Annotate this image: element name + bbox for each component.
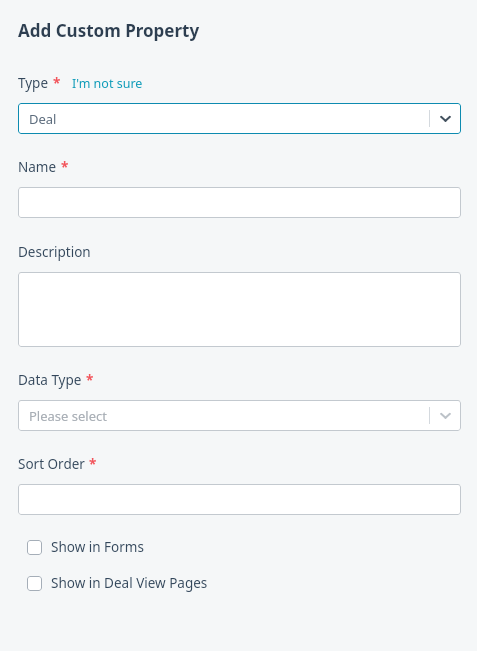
staticText: * — [61, 158, 69, 176]
staticText: Please select — [29, 407, 429, 425]
staticText: Sort Order — [18, 455, 85, 473]
staticText: Name — [18, 158, 57, 176]
staticText: Add Custom Property — [18, 19, 200, 42]
staticText: Deal — [29, 110, 429, 128]
staticText: I'm not sure — [72, 75, 143, 92]
button[interactable] — [18, 484, 461, 515]
button[interactable] — [18, 187, 461, 218]
button[interactable]: Deal — [18, 103, 461, 134]
staticText: Data Type — [18, 371, 82, 389]
staticText: Description — [18, 243, 91, 261]
staticText: * — [89, 455, 97, 473]
staticText: Show in Forms — [51, 538, 144, 556]
staticText: Type — [18, 74, 49, 92]
button[interactable]: I'm not sure — [72, 75, 143, 92]
button[interactable] — [18, 272, 461, 347]
button[interactable]: Please select — [18, 400, 461, 431]
button[interactable]: Show in Forms — [18, 536, 461, 558]
staticText: * — [53, 74, 61, 92]
button[interactable]: Show in Deal View Pages — [18, 572, 461, 594]
staticText: * — [86, 371, 94, 389]
staticText: Show in Deal View Pages — [51, 574, 208, 592]
